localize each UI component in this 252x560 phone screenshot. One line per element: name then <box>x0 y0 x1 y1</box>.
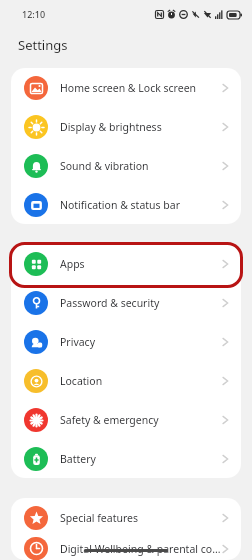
staticText: Safety & emergency <box>60 413 222 427</box>
button[interactable]: Apps <box>11 244 241 283</box>
button[interactable]: Digital Wellbeing & parental controls <box>11 537 241 560</box>
button[interactable]: Password & security <box>11 283 241 322</box>
button[interactable]: Display & brightness <box>11 107 241 146</box>
staticText: Digital Wellbeing & parental controls <box>60 542 222 556</box>
button[interactable]: Notification & status bar <box>11 185 241 224</box>
staticText: 12:10 <box>22 8 46 20</box>
staticText: Sound & vibration <box>60 159 222 173</box>
staticText: Settings <box>18 36 68 54</box>
button[interactable]: Special features <box>11 498 241 537</box>
staticText: Home screen & Lock screen <box>60 81 222 95</box>
staticText: Special features <box>60 511 222 525</box>
button[interactable]: Battery <box>11 439 241 478</box>
staticText: Notification & status bar <box>60 198 222 212</box>
button[interactable]: Home screen & Lock screen <box>11 68 241 107</box>
staticText: Battery <box>60 452 222 466</box>
staticText: Apps <box>60 257 222 271</box>
button[interactable]: Location <box>11 361 241 400</box>
staticText: Password & security <box>60 296 222 310</box>
staticText: Display & brightness <box>60 120 222 134</box>
staticText: Privacy <box>60 335 222 349</box>
button[interactable]: Privacy <box>11 322 241 361</box>
staticText: Location <box>60 374 222 388</box>
button[interactable]: Sound & vibration <box>11 146 241 185</box>
button[interactable]: Safety & emergency <box>11 400 241 439</box>
